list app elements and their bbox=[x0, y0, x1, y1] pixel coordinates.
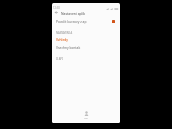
staticText: Vsechny kontak bbox=[56, 45, 81, 49]
staticText: NASTAVENI A bbox=[56, 31, 73, 35]
button[interactable]: Kontakty bbox=[79, 109, 93, 122]
button[interactable]: Vzhledy bbox=[52, 35, 120, 43]
staticText: 12:30 bbox=[53, 6, 60, 10]
staticText: Vzhledy bbox=[56, 37, 68, 41]
button[interactable]: Vsechny kontak bbox=[52, 43, 120, 50]
staticText: Povolit kurzovy z ap bbox=[56, 19, 87, 23]
button[interactable]: Back bbox=[53, 9, 60, 16]
button[interactable]: Povolit kurzovy z ap bbox=[52, 17, 120, 25]
staticText: Lidi bbox=[84, 117, 88, 120]
staticText: O API bbox=[56, 57, 63, 61]
staticText: Nastaveni aplik bbox=[61, 11, 86, 15]
